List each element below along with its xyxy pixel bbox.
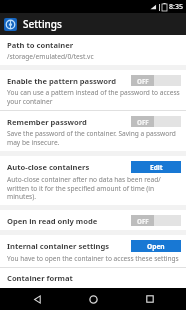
staticText: Auto-close containers	[7, 162, 90, 172]
staticText: OFF	[137, 77, 149, 85]
staticText: 8:35	[169, 2, 183, 12]
button[interactable]: Toggle off	[131, 215, 181, 226]
staticText: Remember password	[7, 117, 87, 127]
staticText: Auto-close container after no data has b…	[7, 175, 181, 201]
staticText: OFF	[137, 118, 149, 126]
button[interactable]: Container format	[0, 268, 186, 288]
staticText: Open	[147, 242, 165, 251]
staticText: Path to container	[7, 40, 74, 50]
staticText: Container format	[7, 273, 73, 283]
staticText: Edit	[150, 163, 163, 172]
button[interactable]: Home	[73, 288, 113, 310]
button[interactable]: Enable the pattern password	[0, 70, 186, 110]
button[interactable]: Open in read only mode	[0, 210, 186, 230]
button[interactable]: Open	[131, 240, 181, 252]
staticText: OFF	[137, 217, 149, 225]
button[interactable]: Toggle off	[131, 116, 181, 127]
button[interactable]: Recent apps	[130, 288, 170, 310]
button[interactable]: Path to container	[0, 35, 186, 65]
button[interactable]: Edit	[131, 161, 181, 173]
button[interactable]: Back	[17, 288, 57, 310]
staticText: Save the password of the container. Savi…	[7, 129, 181, 147]
staticText: Enable the pattern password	[7, 76, 117, 86]
button[interactable]: Auto-close containers	[0, 156, 186, 205]
button[interactable]: Internal container settings	[0, 235, 186, 267]
button[interactable]: Remember password	[0, 111, 186, 151]
staticText: Settings	[23, 17, 62, 31]
staticText: You can use a pattern instead of the pas…	[7, 88, 181, 106]
button[interactable]: Toggle off	[131, 75, 181, 86]
staticText: You have to open the container to access…	[7, 254, 179, 263]
button[interactable]: App icon	[4, 18, 17, 31]
staticText: Open in read only mode	[7, 216, 98, 226]
staticText: Internal container settings	[7, 241, 110, 251]
staticText: /storage/emulated/0/test.vc	[7, 52, 94, 61]
